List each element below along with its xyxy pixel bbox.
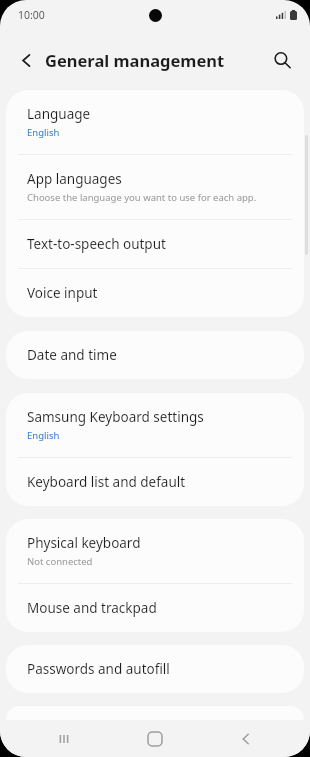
staticText: App languages — [27, 170, 122, 188]
staticText: Passwords and autofill — [27, 660, 170, 678]
button[interactable]: Voice input — [6, 269, 304, 317]
button[interactable]: Mouse and trackpad — [6, 584, 304, 632]
button[interactable]: Home — [128, 722, 182, 756]
staticText: 10:00 — [18, 8, 45, 22]
staticText: Date and time — [27, 346, 117, 364]
button[interactable]: Search — [262, 40, 302, 80]
staticText: Keyboard list and default — [27, 473, 186, 491]
button[interactable]: Navigate up — [6, 40, 46, 80]
button[interactable]: Passwords and autofill — [6, 645, 304, 693]
button[interactable]: Date and time — [6, 331, 304, 379]
button[interactable]: Language — [6, 90, 304, 154]
button[interactable]: Back — [219, 722, 273, 756]
staticText: Mouse and trackpad — [27, 599, 157, 617]
staticText: Voice input — [27, 284, 98, 302]
button[interactable]: Keyboard list and default — [6, 458, 304, 506]
staticText: Samsung Keyboard settings — [27, 408, 204, 426]
staticText: Not connected — [27, 555, 93, 568]
button[interactable]: App languages — [6, 155, 304, 219]
button[interactable]: Physical keyboard — [6, 519, 304, 583]
button[interactable]: Recent apps — [37, 722, 91, 756]
staticText: Text-to-speech output — [27, 235, 166, 253]
staticText: General management — [45, 49, 225, 71]
staticText: English — [27, 429, 60, 442]
button[interactable]: Samsung Keyboard settings — [6, 393, 304, 457]
staticText: English — [27, 126, 60, 139]
staticText: Choose the language you want to use for … — [27, 191, 257, 204]
button[interactable]: Text-to-speech output — [6, 220, 304, 268]
staticText: Language — [27, 105, 91, 123]
staticText: Physical keyboard — [27, 534, 141, 552]
